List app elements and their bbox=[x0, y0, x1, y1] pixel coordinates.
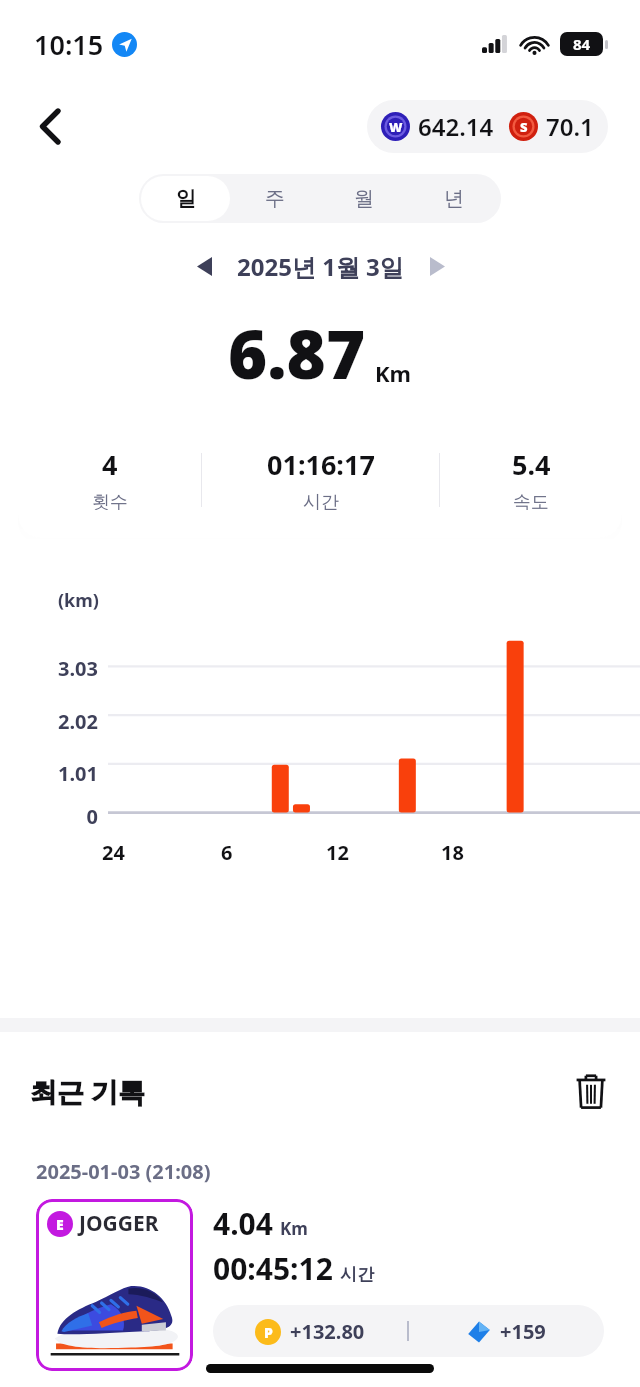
staticText: P bbox=[264, 1323, 273, 1342]
staticText: 18 bbox=[441, 839, 464, 866]
button[interactable]: Next day bbox=[414, 243, 460, 289]
staticText: JOGGER bbox=[79, 1209, 159, 1238]
staticText: 70.1 bbox=[546, 110, 594, 143]
staticText: 년 bbox=[444, 186, 464, 211]
staticText: (km) bbox=[58, 588, 99, 613]
button[interactable]: 주 bbox=[230, 176, 319, 221]
button[interactable]: Back bbox=[20, 97, 78, 155]
staticText: 4.04 bbox=[213, 1203, 273, 1244]
staticText: +132.80 bbox=[290, 1318, 365, 1345]
staticText: 시간 bbox=[303, 491, 339, 514]
button[interactable]: 2025-01-03 (21:08) bbox=[18, 1142, 622, 1387]
staticText: Km bbox=[280, 1217, 308, 1240]
staticText: 2.02 bbox=[0, 708, 98, 735]
button[interactable]: 일 bbox=[141, 176, 230, 221]
button[interactable]: 년 bbox=[409, 176, 499, 221]
staticText: 24 bbox=[102, 839, 125, 866]
button[interactable]: 01:16:17 bbox=[202, 446, 439, 514]
staticText: 주 bbox=[265, 186, 285, 211]
staticText: 12 bbox=[326, 839, 349, 866]
staticText: 10:15 bbox=[34, 26, 104, 63]
staticText: 2025년 1월 3일 bbox=[237, 250, 404, 283]
staticText: 2025-01-03 (21:08) bbox=[36, 1158, 211, 1185]
button[interactable]: 4 bbox=[18, 446, 201, 514]
staticText: 6 bbox=[221, 839, 233, 866]
button[interactable]: W bbox=[367, 100, 608, 153]
button[interactable]: P bbox=[213, 1305, 604, 1357]
staticText: 시간 bbox=[340, 1264, 374, 1285]
staticText: Km bbox=[375, 358, 412, 388]
staticText: 84 bbox=[573, 34, 591, 54]
button[interactable]: 5.4 bbox=[440, 446, 622, 514]
staticText: 4 bbox=[102, 446, 118, 483]
staticText: 1.01 bbox=[0, 760, 98, 787]
button[interactable]: 월 bbox=[319, 176, 409, 221]
staticText: S bbox=[520, 118, 528, 136]
staticText: 0 bbox=[0, 803, 98, 830]
staticText: 01:16:17 bbox=[267, 446, 375, 483]
staticText: 5.4 bbox=[512, 446, 551, 483]
staticText: +159 bbox=[500, 1318, 546, 1345]
staticText: 6.87 bbox=[228, 307, 366, 398]
staticText: 00:45:12 bbox=[213, 1248, 333, 1289]
staticText: 3.03 bbox=[0, 655, 98, 682]
staticText: E bbox=[56, 1215, 64, 1234]
button[interactable]: Delete records bbox=[566, 1066, 616, 1116]
staticText: W bbox=[389, 118, 403, 136]
button[interactable]: Previous day bbox=[181, 243, 227, 289]
staticText: 속도 bbox=[513, 491, 549, 514]
staticText: 642.14 bbox=[418, 110, 494, 143]
staticText: 최근 기록 bbox=[30, 1073, 146, 1110]
staticText: 일 bbox=[176, 186, 196, 211]
staticText: 횟수 bbox=[92, 491, 128, 514]
staticText: 월 bbox=[354, 186, 374, 211]
